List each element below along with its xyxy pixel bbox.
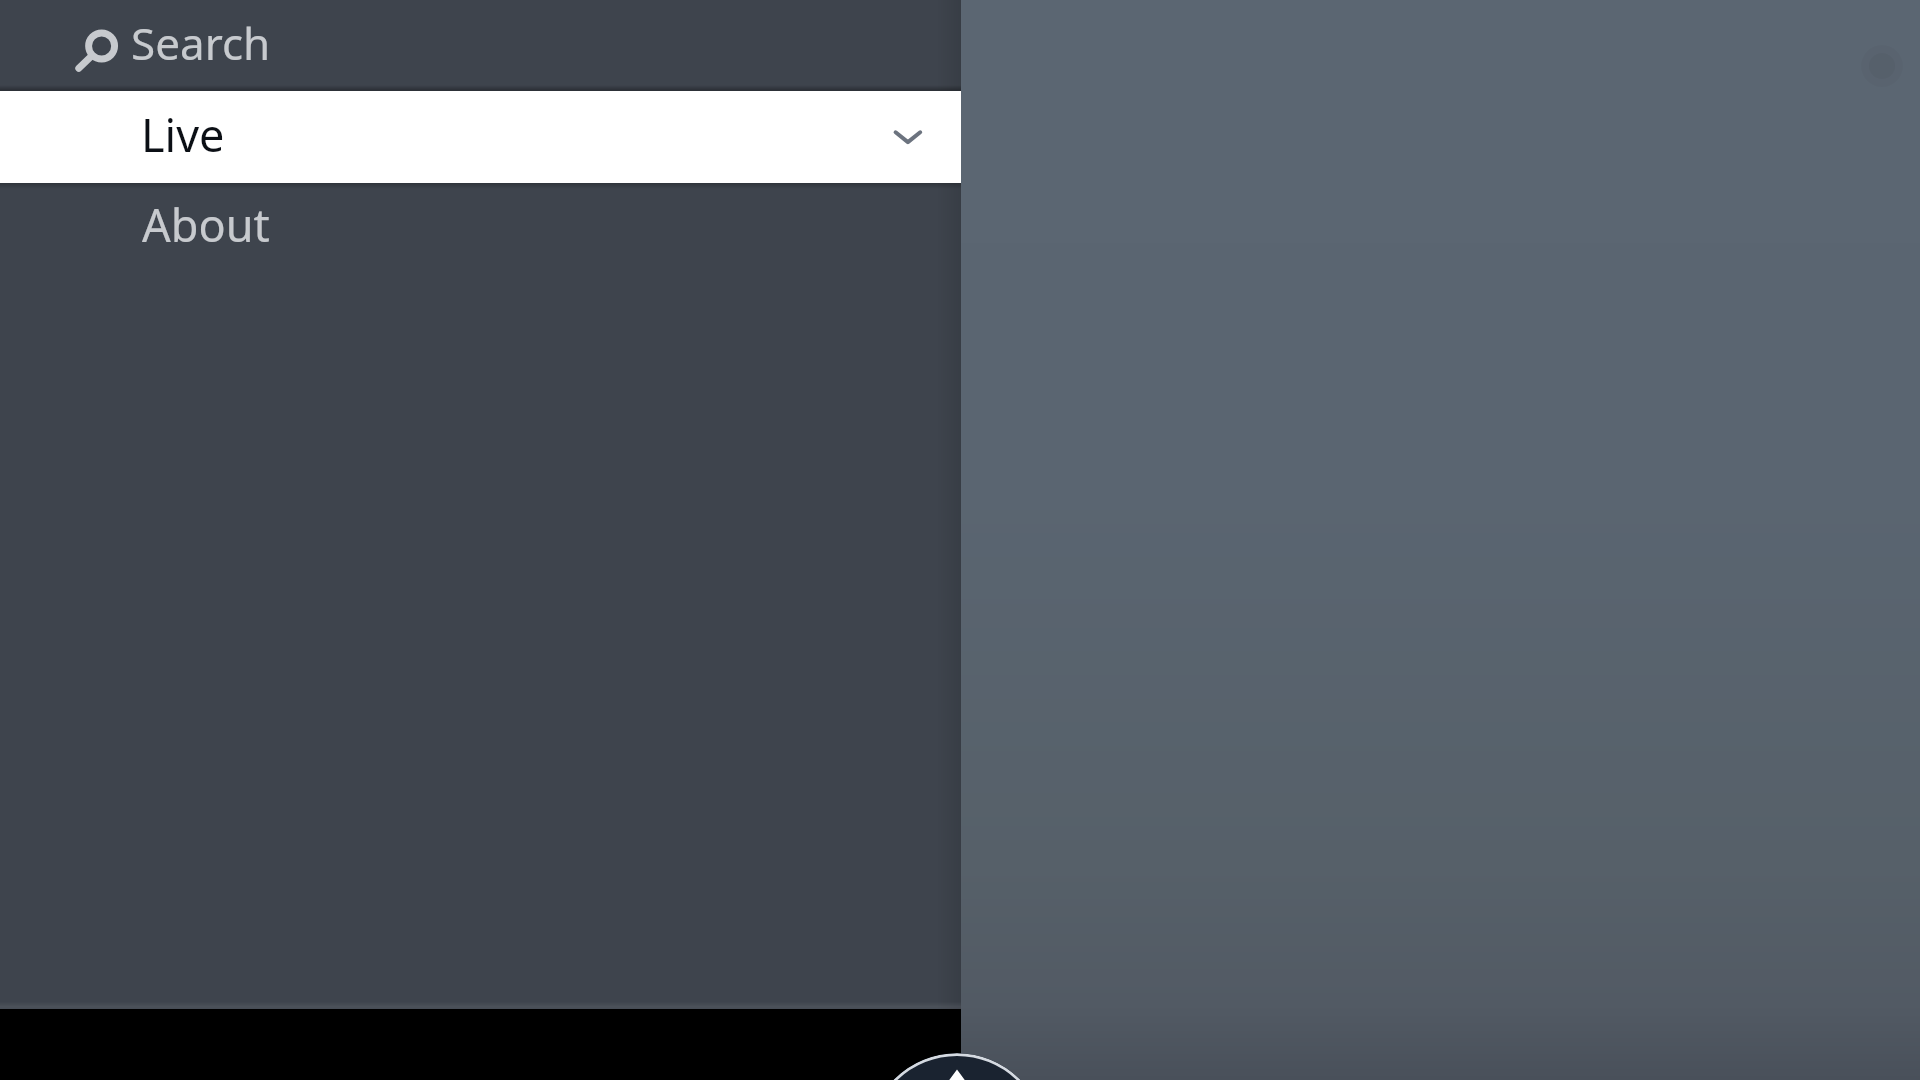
staticText: About: [142, 194, 270, 255]
button[interactable]: About: [0, 183, 961, 275]
button[interactable]: Compass, reset bearing to north: [868, 1053, 1046, 1080]
button[interactable]: Search: [0, 0, 961, 91]
staticText: Search: [131, 13, 271, 73]
staticText: Live: [141, 104, 225, 165]
button[interactable]: Live: [0, 91, 961, 183]
